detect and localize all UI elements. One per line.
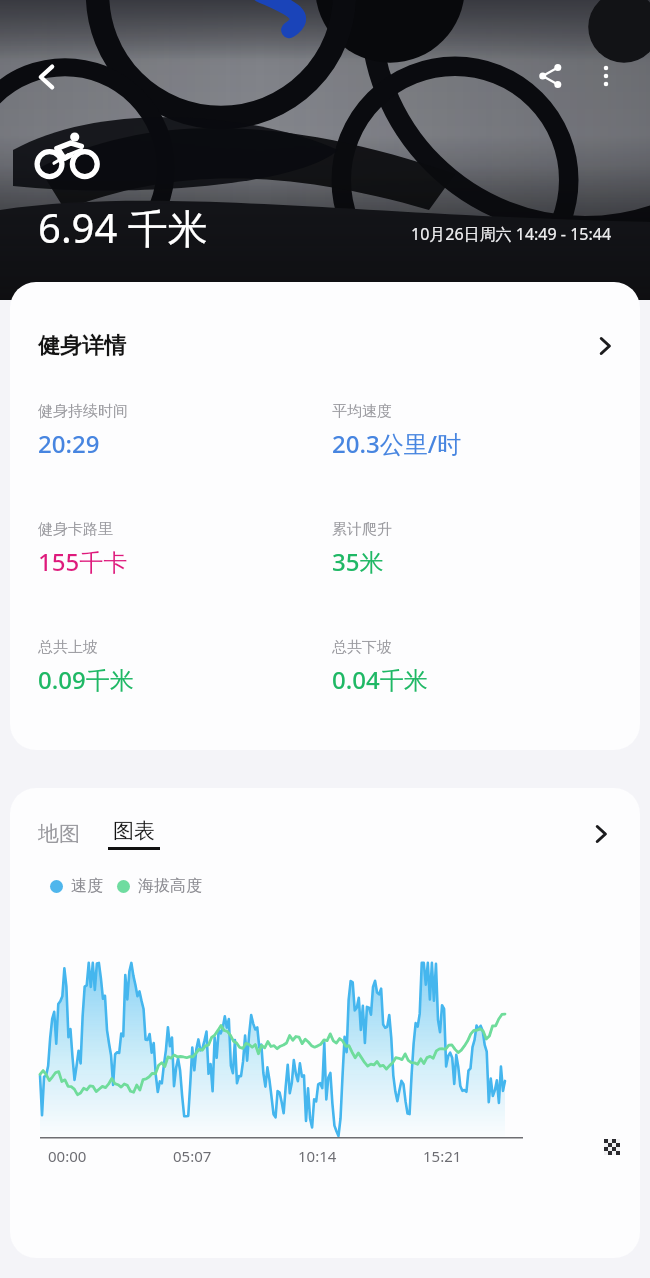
staticText: 图表 [113, 818, 155, 844]
staticText: 0.09千米 [38, 663, 134, 696]
staticText: 15:21 [423, 1146, 462, 1166]
staticText: 0.04千米 [332, 663, 428, 696]
staticText: 35米 [332, 545, 384, 578]
button[interactable]: More options [578, 48, 634, 104]
staticText: 20:29 [38, 427, 100, 460]
staticText: 速度 [71, 876, 103, 896]
button[interactable]: 图表 [108, 818, 160, 850]
staticText: 健身详情 [38, 332, 126, 360]
staticText: 总共上坡 [38, 638, 98, 657]
staticText: 10:14 [298, 1146, 337, 1166]
button[interactable]: Back [18, 48, 76, 106]
staticText: 10月26日周六 14:49 - 15:44 [411, 223, 612, 245]
staticText: 05:07 [173, 1146, 212, 1166]
staticText: 海拔高度 [138, 876, 202, 896]
staticText: 20.3公里/时 [332, 427, 461, 460]
staticText: 155千卡 [38, 545, 128, 578]
staticText: 累计爬升 [332, 520, 392, 539]
staticText: 地图 [38, 821, 80, 847]
staticText: 平均速度 [332, 402, 392, 421]
button[interactable]: Open chart [586, 819, 616, 849]
staticText: 6.94 千米 [38, 200, 208, 255]
button[interactable]: 健身详情 [10, 322, 640, 370]
staticText: 总共下坡 [332, 638, 392, 657]
staticText: 健身卡路里 [38, 520, 113, 539]
staticText: 00:00 [48, 1146, 87, 1166]
staticText: 健身持续时间 [38, 402, 128, 421]
button[interactable]: Share [522, 48, 578, 104]
button[interactable]: 地图 [38, 821, 84, 847]
